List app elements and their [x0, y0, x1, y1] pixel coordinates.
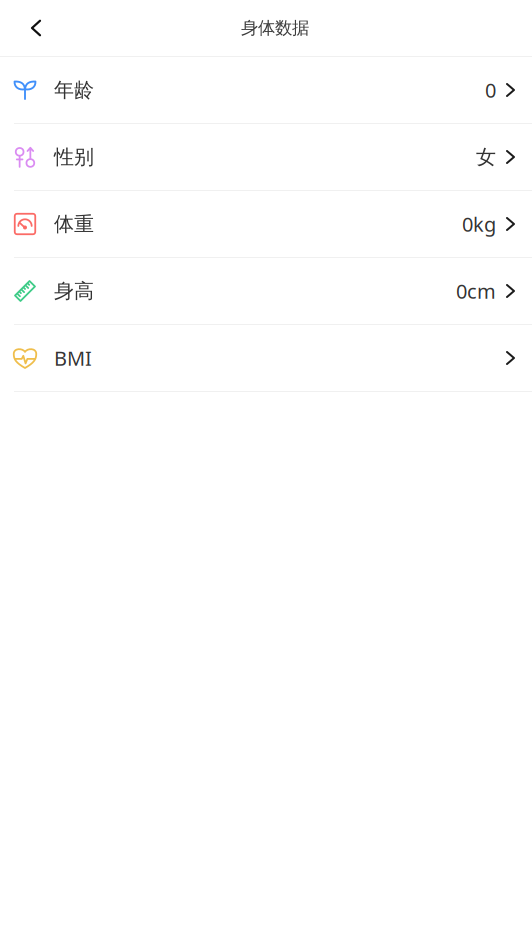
- button[interactable]: 年龄: [0, 57, 532, 124]
- button[interactable]: 性别: [0, 124, 532, 191]
- staticText: BMI: [54, 345, 92, 371]
- staticText: 身高: [54, 279, 94, 303]
- staticText: 性别: [54, 145, 94, 169]
- button[interactable]: 体重: [0, 191, 532, 258]
- staticText: 0: [485, 77, 496, 103]
- staticText: 0kg: [462, 211, 496, 237]
- staticText: 体重: [54, 212, 94, 236]
- button[interactable]: Back: [14, 0, 58, 56]
- button[interactable]: 身高: [0, 258, 532, 325]
- staticText: 年龄: [54, 78, 94, 102]
- button[interactable]: BMI: [0, 325, 532, 392]
- staticText: 身体数据: [241, 17, 309, 39]
- staticText: 0cm: [456, 278, 496, 304]
- staticText: 女: [476, 145, 496, 169]
